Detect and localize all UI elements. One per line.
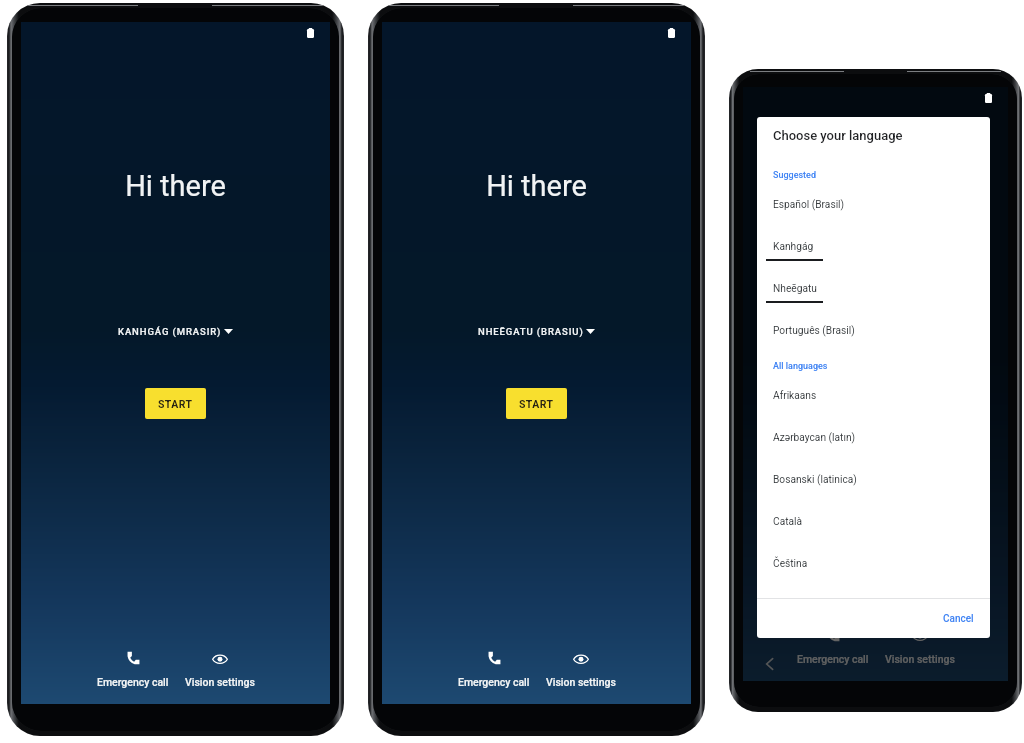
button[interactable]: Vision settings	[879, 627, 961, 668]
button[interactable]: Nheẽgatu	[757, 271, 990, 313]
staticText: Suggested	[773, 170, 817, 181]
staticText: Kanhgág	[773, 241, 814, 253]
staticText: Español (Brasil)	[773, 199, 845, 211]
button[interactable]: Vision settings	[540, 650, 622, 691]
staticText: Hi there	[743, 218, 1008, 252]
button[interactable]: Kanhgág	[757, 229, 990, 271]
button[interactable]: Azərbaycan (latın)	[757, 420, 990, 462]
button[interactable]: Emergency call	[791, 625, 875, 668]
button[interactable]: Català	[757, 504, 990, 546]
button[interactable]: Čeština	[757, 546, 990, 588]
button[interactable]: Afrikaans	[757, 378, 990, 420]
staticText: Emergency call	[458, 676, 530, 688]
staticText: Vision settings	[185, 676, 255, 688]
button[interactable]: Emergency call	[91, 648, 175, 691]
button[interactable]: START	[845, 415, 906, 446]
staticText: Emergency call	[97, 676, 169, 688]
staticText: Emergency call	[797, 653, 869, 665]
button[interactable]: START	[506, 388, 567, 419]
button[interactable]: START	[145, 388, 206, 419]
staticText: All languages	[773, 361, 828, 372]
button[interactable]: Cancel	[937, 607, 980, 631]
button[interactable]: Emergency call	[452, 648, 536, 691]
button[interactable]: KANHGÁG (MRASIR)	[21, 326, 330, 337]
staticText: Català	[773, 516, 803, 528]
staticText: Vision settings	[885, 653, 955, 665]
staticText: Azərbaycan (latın)	[773, 432, 856, 444]
button[interactable]: NHEẼGATU (BRASIU)	[382, 326, 691, 337]
staticText: Vision settings	[546, 676, 616, 688]
staticText: NHEẼGATU (BRASIU)	[817, 359, 923, 370]
staticText: Português (Brasil)	[773, 325, 855, 337]
button[interactable]: Back	[761, 653, 778, 675]
staticText: Hi there	[382, 169, 691, 203]
staticText: NHEẼGATU (BRASIU)	[478, 326, 584, 337]
staticText: Bosanski (latinica)	[773, 474, 857, 486]
staticText: Nheẽgatu	[773, 283, 817, 295]
button[interactable]: NHEẼGATU (BRASIU)	[743, 359, 1008, 370]
staticText: START	[519, 398, 554, 410]
button[interactable]: Português (Brasil)	[757, 313, 990, 355]
staticText: Čeština	[773, 558, 808, 570]
staticText: Cancel	[943, 613, 974, 625]
staticText: Hi there	[21, 169, 330, 203]
button[interactable]: Bosanski (latinica)	[757, 462, 990, 504]
staticText: KANHGÁG (MRASIR)	[118, 326, 222, 337]
button[interactable]: Vision settings	[179, 650, 261, 691]
staticText: Afrikaans	[773, 390, 817, 402]
staticText: Choose your language	[773, 128, 903, 143]
staticText: START	[158, 398, 193, 410]
button[interactable]: Español (Brasil)	[757, 187, 990, 229]
